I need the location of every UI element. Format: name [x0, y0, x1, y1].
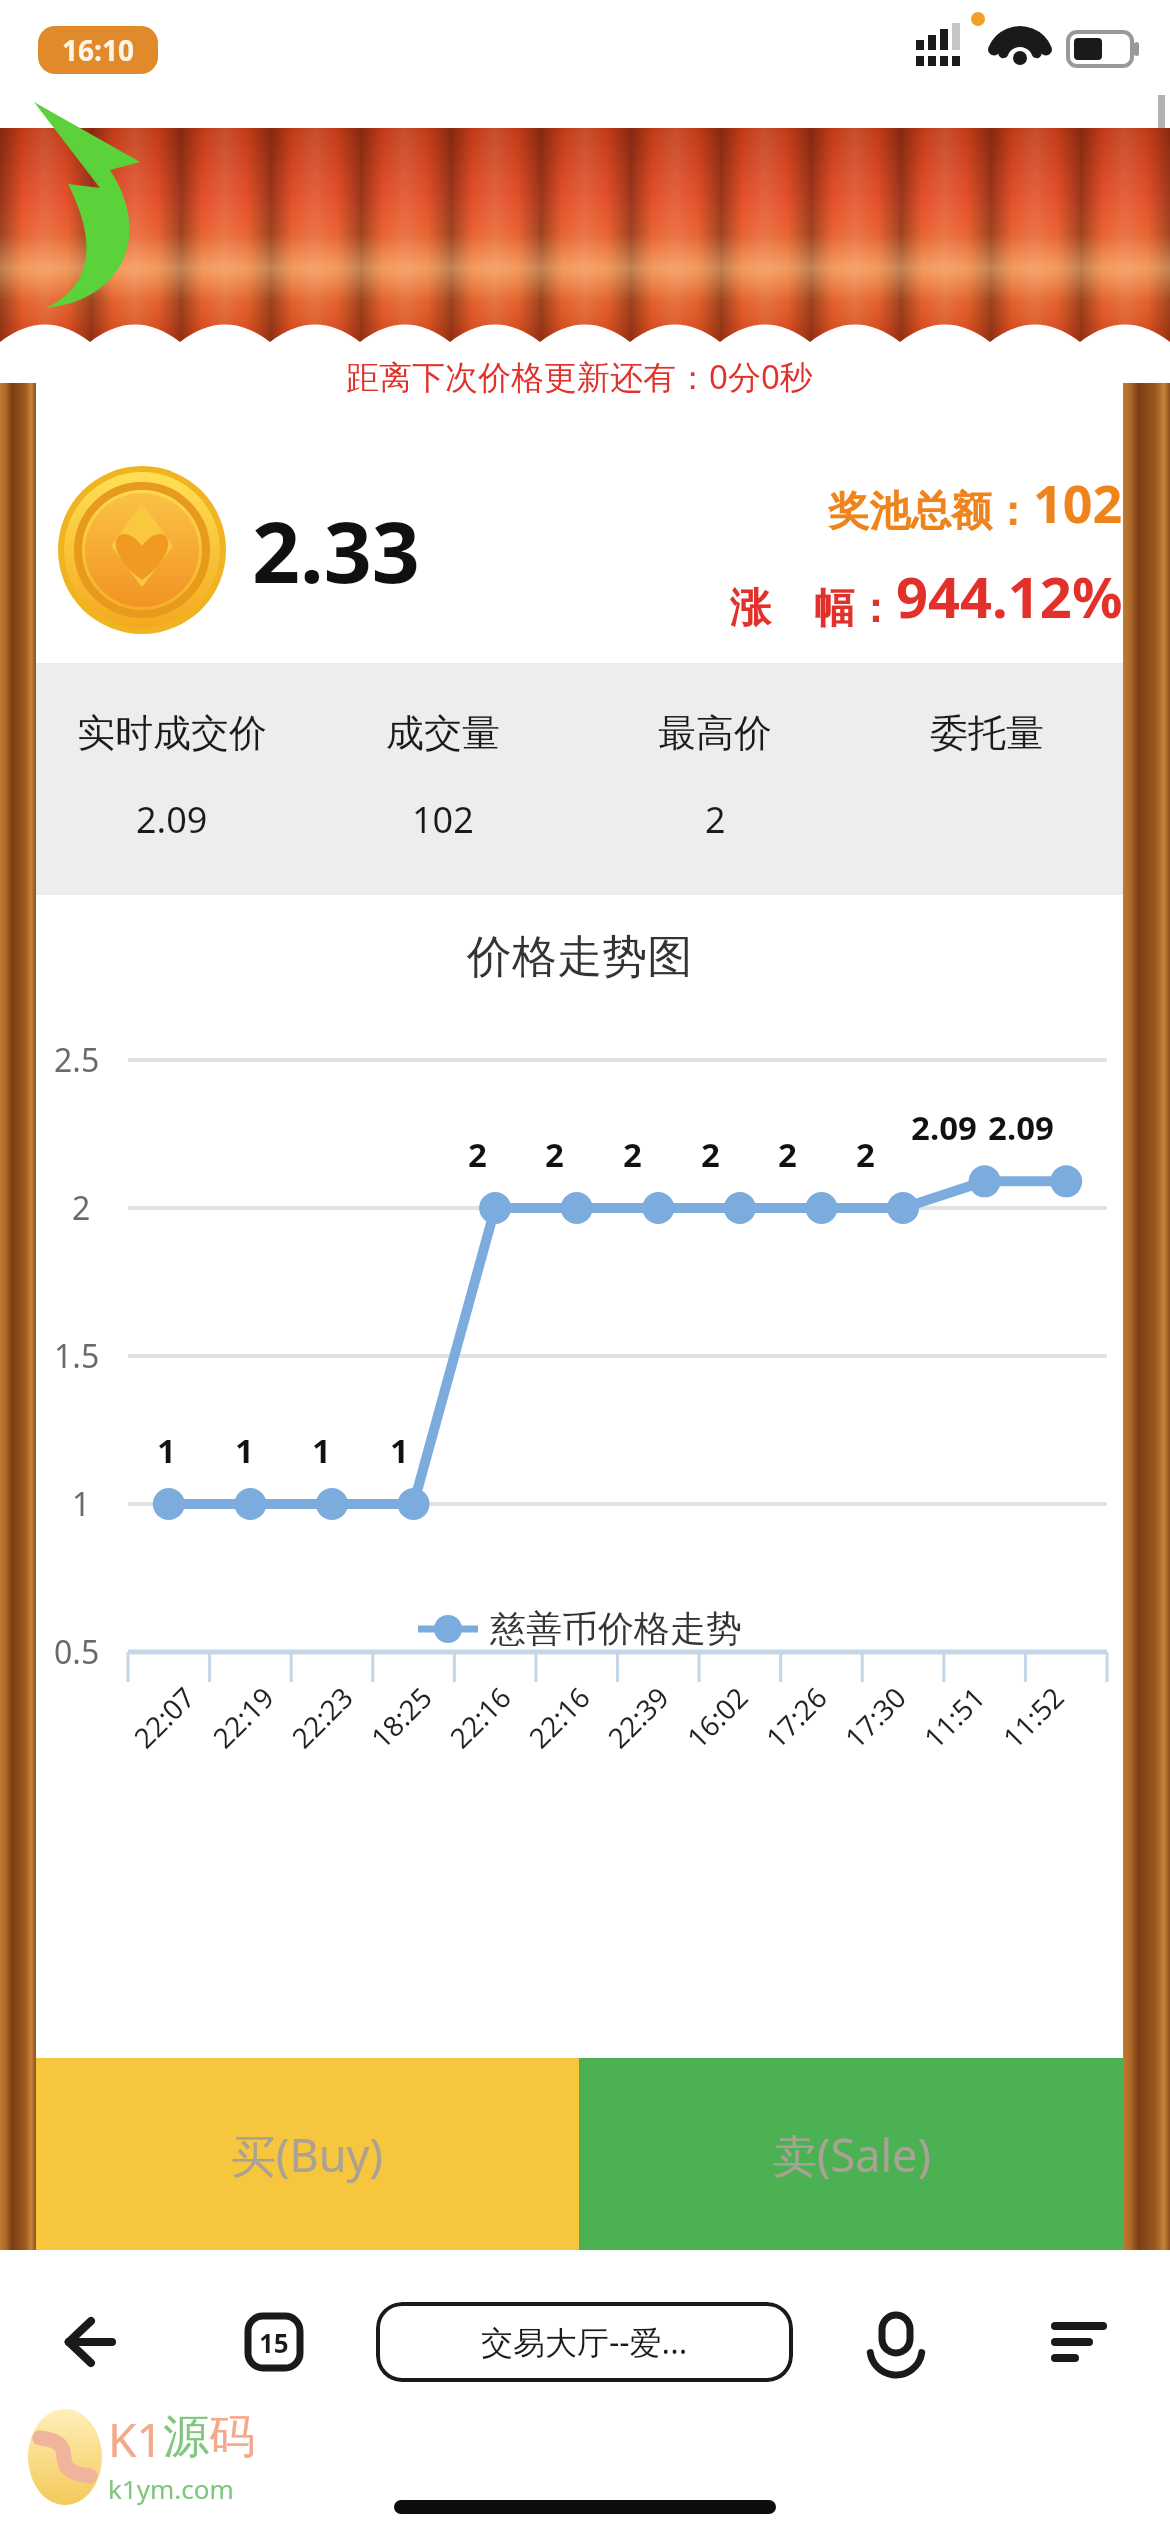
staticText: 距离下次价格更新还有：0分0秒 — [346, 354, 813, 399]
staticText: 买(Buy) — [231, 2124, 384, 2185]
staticText: 2 — [701, 1132, 720, 1177]
staticText: 22:16 — [441, 1678, 519, 1756]
staticText: 102 — [412, 795, 474, 844]
staticText: 2.5 — [54, 1038, 100, 1082]
staticText: 2.09 — [988, 1105, 1054, 1150]
staticText: k1ym.com — [108, 2471, 234, 2506]
staticText: 奖池总额： — [828, 486, 1033, 538]
staticText: 16:02 — [678, 1678, 756, 1756]
staticText: 22:19 — [204, 1678, 282, 1756]
staticText: 成交量 — [386, 709, 500, 757]
staticText: 卖(Sale) — [772, 2124, 931, 2185]
staticText: 2 — [468, 1132, 487, 1177]
staticText: 1 — [235, 1428, 254, 1473]
staticText: 17:26 — [757, 1678, 835, 1756]
staticText: 0.5 — [54, 1630, 100, 1674]
staticText: 2.09 — [911, 1105, 977, 1150]
staticText: 2 — [856, 1132, 875, 1177]
button[interactable]: 买(Buy) — [36, 2058, 579, 2250]
staticText: 2 — [623, 1132, 642, 1177]
staticText: 2 — [705, 795, 726, 844]
staticText: 1 — [72, 1482, 91, 1526]
staticText: 2 — [72, 1186, 91, 1230]
staticText: 17:30 — [836, 1678, 914, 1756]
staticText: 22:16 — [520, 1678, 598, 1756]
staticText: 慈善币价格走势 — [490, 1606, 742, 1651]
staticText: 1 — [312, 1428, 331, 1473]
staticText: 1 — [390, 1428, 409, 1473]
staticText: 价格走势图 — [467, 929, 692, 986]
staticText: 11:52 — [994, 1678, 1072, 1756]
staticText: 委托量 — [930, 709, 1044, 757]
staticText: K1 — [108, 2408, 163, 2471]
staticText: 22:07 — [125, 1678, 203, 1756]
staticText: 18:25 — [362, 1678, 440, 1756]
staticText: 22:39 — [599, 1678, 677, 1756]
staticText: 102 — [1033, 467, 1123, 538]
staticText: 22:23 — [283, 1678, 361, 1756]
staticText: 2.33 — [252, 493, 420, 607]
button[interactable]: 卖(Sale) — [579, 2058, 1123, 2250]
staticText: 15 — [259, 2325, 289, 2360]
staticText: 16:10 — [62, 31, 134, 69]
button[interactable]: Tabs — [182, 2282, 365, 2402]
button[interactable]: Back — [0, 2282, 182, 2402]
staticText: 2 — [545, 1132, 564, 1177]
staticText: 1.5 — [54, 1334, 100, 1378]
staticText: 11:51 — [915, 1678, 993, 1756]
staticText: 最高价 — [658, 709, 772, 757]
staticText: 码 — [209, 2408, 255, 2466]
staticText: 2 — [778, 1132, 797, 1177]
staticText: 交易大厅--爱... — [481, 2320, 688, 2364]
staticText: 实时成交价 — [77, 709, 267, 757]
staticText: 2.09 — [136, 795, 208, 844]
button[interactable]: Voice search — [804, 2282, 987, 2402]
staticText: 源 — [163, 2408, 209, 2466]
staticText: 1 — [157, 1428, 176, 1473]
button[interactable]: Menu — [987, 2282, 1170, 2402]
staticText: 944.12% — [896, 558, 1123, 634]
staticText: 涨 幅： — [730, 578, 896, 634]
button[interactable]: 交易大厅--爱... — [376, 2302, 793, 2382]
